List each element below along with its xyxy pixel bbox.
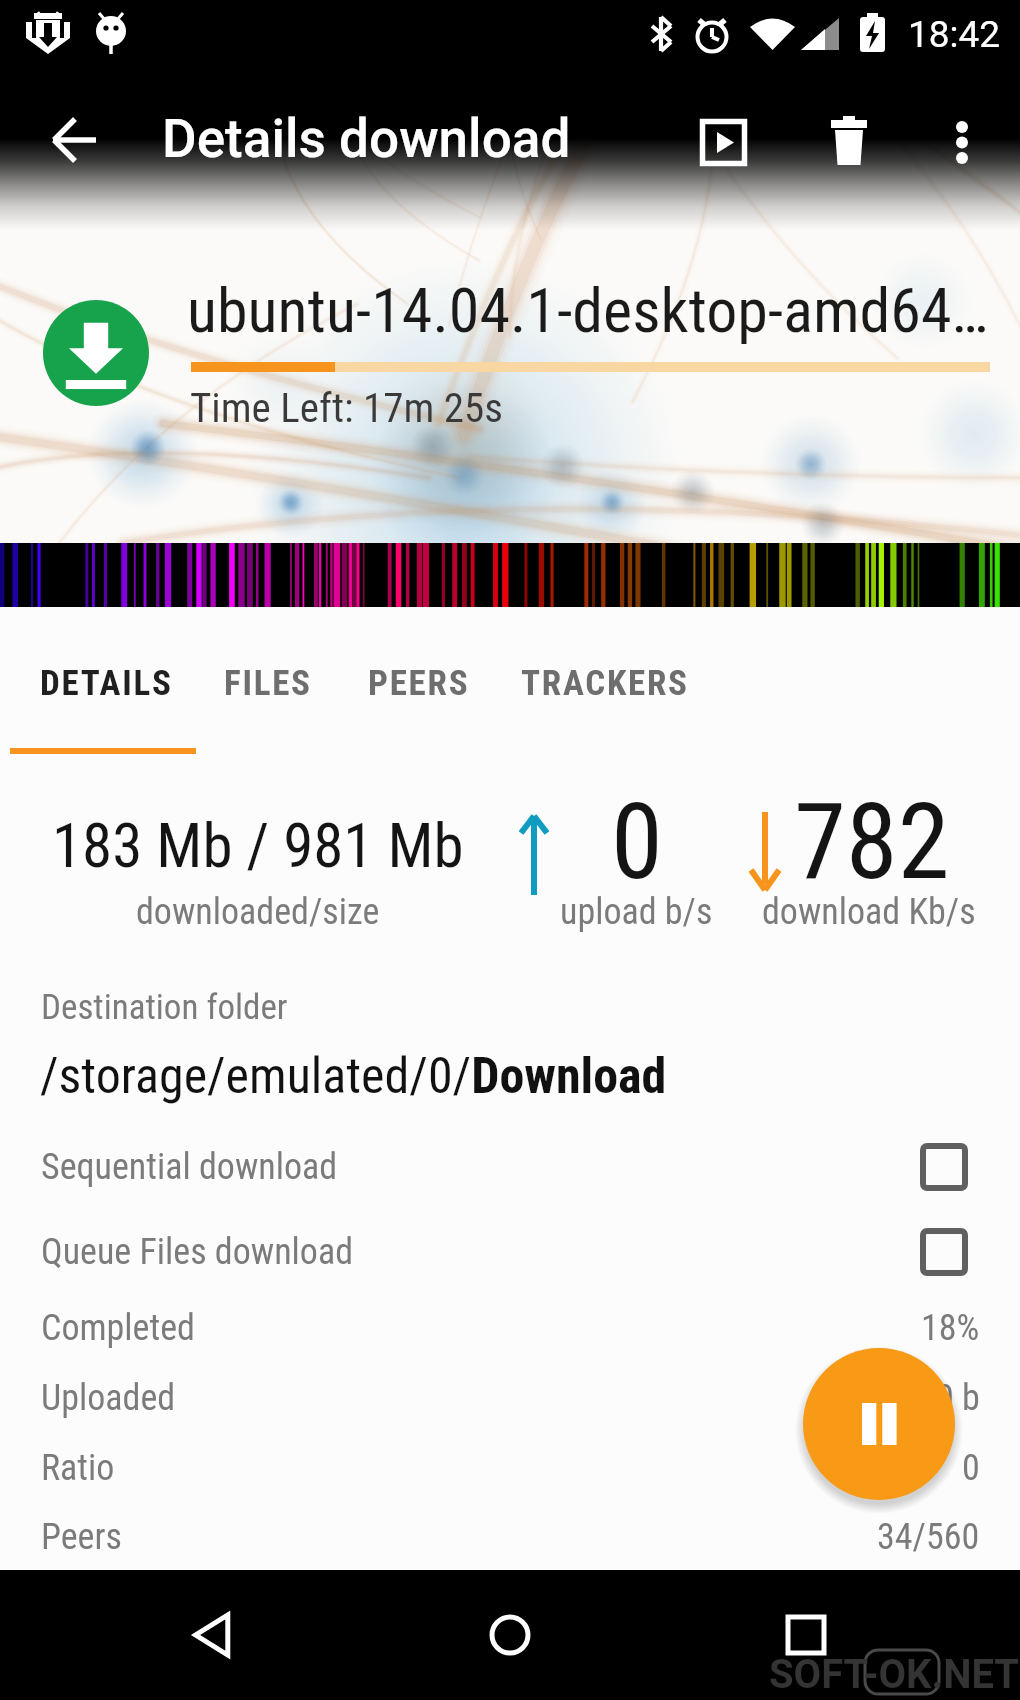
staticText: Details download <box>162 108 571 170</box>
staticText: Uploaded <box>41 1377 176 1419</box>
button[interactable]: FILES <box>194 628 341 738</box>
staticText: ubuntu-14.04.1-desktop-amd64… <box>187 274 989 347</box>
staticText: 18% <box>921 1307 980 1349</box>
button[interactable]: Ratio <box>0 1433 1020 1503</box>
staticText: TRACKERS <box>521 663 689 704</box>
staticText: DETAILS <box>40 663 173 704</box>
button[interactable]: Completed <box>0 1293 1020 1363</box>
staticText: 34/560 <box>877 1516 980 1558</box>
button[interactable]: Back <box>171 1592 257 1678</box>
button[interactable]: DETAILS <box>10 628 203 738</box>
button[interactable]: Recent apps <box>763 1592 849 1678</box>
staticText: FILES <box>224 663 312 704</box>
button[interactable]: /storage/emulated/0/Download <box>0 1036 1020 1116</box>
button[interactable]: Delete <box>801 92 897 188</box>
button[interactable]: PEERS <box>338 628 499 738</box>
button[interactable]: TRACKERS <box>497 628 712 738</box>
button[interactable]: Destination folder <box>0 976 1020 1038</box>
staticText: Completed <box>41 1307 195 1349</box>
button[interactable]: Peers <box>0 1502 1020 1572</box>
staticText: downloaded/size <box>136 891 380 933</box>
button[interactable]: Back <box>22 90 126 190</box>
staticText: Destination folder <box>41 987 288 1028</box>
button[interactable]: More options <box>914 94 1010 190</box>
staticText: 0 b <box>936 1377 980 1419</box>
button[interactable]: Pause download <box>803 1348 955 1500</box>
button[interactable]: Play <box>675 94 771 190</box>
staticText: 0 <box>962 1447 980 1489</box>
staticText: download Kb/s <box>762 891 976 933</box>
button[interactable]: Queue Files download <box>0 1212 1020 1292</box>
staticText: Ratio <box>41 1447 115 1489</box>
staticText: Peers <box>41 1516 122 1558</box>
staticText: Time Left: 17m 25s <box>190 384 503 432</box>
staticText: /storage/emulated/0/Download <box>40 1047 667 1106</box>
staticText: 0 <box>611 781 663 904</box>
button[interactable]: Home <box>467 1592 553 1678</box>
staticText: PEERS <box>368 663 470 704</box>
staticText: upload b/s <box>560 891 713 933</box>
staticText: 18:42 <box>908 13 1001 56</box>
button[interactable]: Sequential download <box>0 1127 1020 1207</box>
staticText: SOFT-OK.NET <box>769 1651 1020 1698</box>
staticText: Queue Files download <box>41 1231 354 1273</box>
staticText: Sequential download <box>41 1146 338 1188</box>
button[interactable]: Downloading <box>43 300 149 406</box>
staticText: 183 Mb / 981 Mb <box>52 810 464 881</box>
staticText: 782 <box>794 781 950 904</box>
button[interactable]: Uploaded <box>0 1363 1020 1433</box>
